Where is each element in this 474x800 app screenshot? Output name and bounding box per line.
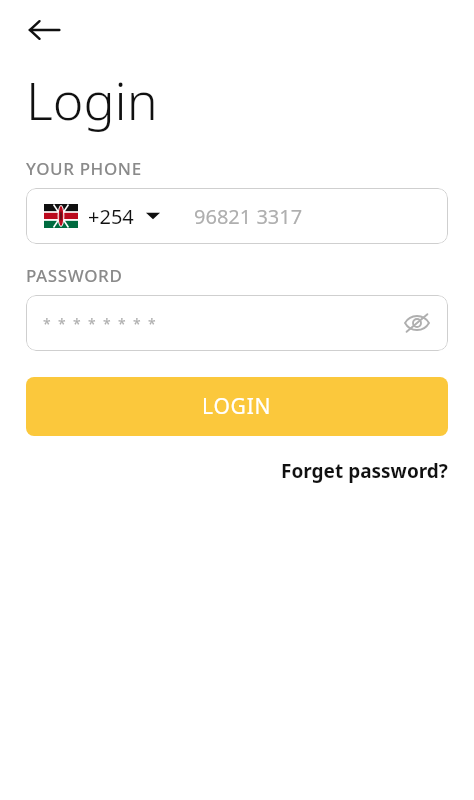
staticText: Login	[26, 64, 158, 135]
staticText: PASSWORD	[26, 264, 123, 287]
staticText: LOGIN	[202, 392, 272, 421]
button[interactable]: * * * * * * * *	[26, 295, 448, 351]
button[interactable]: Show password	[394, 300, 440, 346]
button[interactable]: +254	[26, 188, 448, 244]
staticText: 96821 3317	[194, 203, 303, 230]
button[interactable]: Back	[22, 8, 66, 52]
staticText: +254	[88, 203, 134, 230]
staticText: Forget password?	[281, 458, 448, 484]
button[interactable]: LOGIN	[26, 377, 448, 436]
staticText: YOUR PHONE	[26, 157, 142, 180]
staticText: * * * * * * * *	[43, 314, 156, 333]
button[interactable]: Forget password?	[281, 458, 448, 484]
